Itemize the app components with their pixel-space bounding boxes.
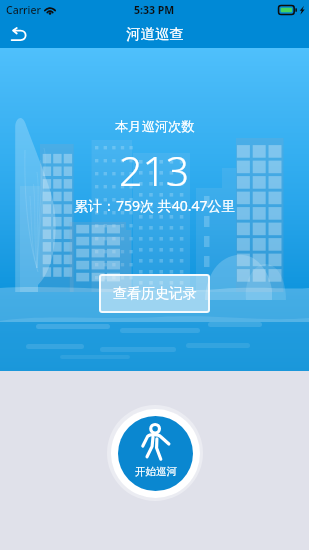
button[interactable]: 查看历史记录 [99, 274, 210, 313]
staticText: 开始巡河 [135, 465, 177, 478]
staticText: 查看历史记录 [113, 285, 197, 303]
button[interactable]: Back [0, 20, 38, 48]
staticText: 213 [119, 142, 190, 198]
staticText: 本月巡河次数 [115, 118, 195, 135]
staticText: 5:33 PM [134, 3, 175, 17]
staticText: 累计：759次 共40.47公里 [74, 196, 236, 215]
staticText: 河道巡查 [126, 25, 184, 43]
staticText: Carrier [6, 3, 41, 17]
button[interactable]: 开始巡河 [107, 405, 203, 501]
